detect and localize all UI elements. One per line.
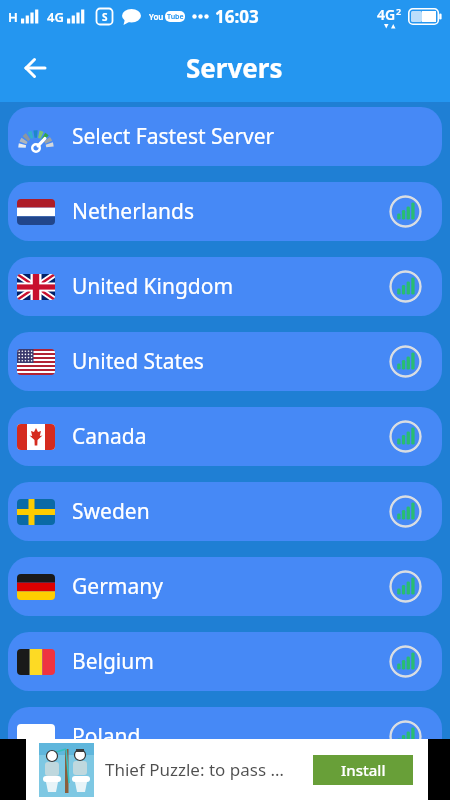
button[interactable]: Install (313, 755, 413, 785)
button[interactable] (389, 345, 422, 378)
button[interactable]: United Kingdom (8, 257, 442, 316)
staticText: Belgium (72, 647, 154, 676)
staticText: Thief Puzzle: to pass … (105, 758, 284, 781)
staticText: Select Fastest Server (72, 122, 275, 151)
staticText: 2 (396, 5, 402, 17)
staticText: Tube (167, 12, 184, 22)
button[interactable]: United States (8, 332, 442, 391)
staticText: 16:03 (215, 5, 259, 28)
button[interactable]: Netherlands (8, 182, 442, 241)
staticText: 4G (47, 8, 64, 26)
button[interactable] (389, 720, 422, 753)
staticText: Poland (72, 722, 141, 751)
button[interactable]: Poland (8, 707, 442, 766)
staticText: Servers (186, 50, 283, 85)
button[interactable]: Canada (8, 407, 442, 466)
staticText: Install (341, 760, 386, 780)
staticText: 4G (377, 5, 396, 24)
staticText: United States (72, 347, 204, 376)
staticText: Germany (72, 572, 163, 601)
button[interactable] (389, 645, 422, 678)
button[interactable]: Germany (8, 557, 442, 616)
button[interactable]: Select Fastest Server (8, 107, 442, 166)
button[interactable] (389, 420, 422, 453)
button[interactable] (389, 495, 422, 528)
button[interactable]: Thief Puzzle: to pass … (26, 739, 428, 800)
button[interactable]: Sweden (8, 482, 442, 541)
staticText: United Kingdom (72, 272, 234, 301)
button[interactable] (389, 270, 422, 303)
button[interactable] (389, 570, 422, 603)
staticText: H (8, 8, 18, 26)
button[interactable] (389, 195, 422, 228)
button[interactable]: Belgium (8, 632, 442, 691)
staticText: Canada (72, 422, 147, 451)
staticText: You (149, 11, 164, 22)
staticText: Netherlands (72, 197, 195, 226)
staticText: S (102, 10, 108, 24)
button[interactable] (18, 51, 52, 85)
staticText: Sweden (72, 497, 150, 526)
